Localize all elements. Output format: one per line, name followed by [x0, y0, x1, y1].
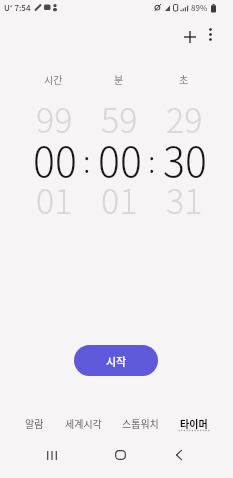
button[interactable] — [38, 441, 66, 469]
button[interactable] — [106, 441, 134, 469]
staticText: 시간 — [44, 72, 63, 86]
staticText: 00 — [33, 129, 77, 171]
staticText: 29 — [166, 94, 203, 126]
staticText: 분 — [114, 72, 124, 86]
button[interactable] — [176, 23, 204, 51]
button[interactable]: 시작 — [74, 345, 158, 376]
staticText: 스톱워치 — [122, 416, 159, 430]
button[interactable]: 알람 — [14, 412, 55, 434]
staticText: 01 — [101, 175, 138, 215]
button[interactable]: 99 — [30, 98, 79, 219]
staticText: 타이머 — [180, 416, 208, 430]
button[interactable]: 세계시각 — [61, 412, 105, 434]
staticText: U⁺ 7:54 — [4, 2, 31, 14]
staticText: 59 — [101, 94, 138, 126]
staticText: 30 — [163, 129, 207, 171]
staticText: 알람 — [25, 416, 44, 430]
staticText: 세계시각 — [65, 416, 102, 430]
button[interactable]: 타이머 — [172, 412, 215, 434]
staticText: : — [83, 138, 91, 181]
button[interactable]: 스톱워치 — [118, 412, 162, 434]
staticText: : — [148, 138, 156, 181]
staticText: 31 — [166, 175, 203, 215]
button[interactable] — [199, 23, 222, 46]
button[interactable]: 59 — [95, 98, 144, 219]
staticText: 초 — [179, 72, 189, 86]
button[interactable] — [165, 441, 193, 469]
staticText: 89% — [191, 2, 208, 14]
staticText: 시작 — [106, 353, 127, 369]
staticText: 99 — [36, 94, 73, 126]
button[interactable]: 29 — [160, 98, 209, 219]
staticText: 01 — [36, 175, 73, 215]
staticText: 00 — [98, 129, 142, 171]
